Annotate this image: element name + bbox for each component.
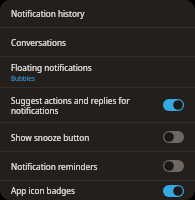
button[interactable]: App icon badges, on: [160, 181, 186, 200]
button[interactable]: Show snooze button: [0, 123, 195, 151]
button[interactable]: Notification reminders, off: [160, 156, 186, 176]
button[interactable]: Suggest actions and replies for notifica…: [0, 88, 195, 122]
staticText: Notification reminders: [11, 161, 98, 172]
button[interactable]: App icon badges: [0, 181, 195, 200]
staticText: Floating notifications: [11, 62, 92, 73]
staticText: App icon badges: [11, 185, 75, 196]
staticText: Show snooze button: [11, 132, 90, 143]
button[interactable]: Suggest actions and replies for notifica…: [160, 95, 186, 115]
staticText: Bubbles: [11, 74, 35, 83]
staticText: Notification history: [11, 8, 85, 19]
button[interactable]: Notification reminders: [0, 152, 195, 180]
button[interactable]: Floating notifications: [0, 57, 195, 87]
button[interactable]: Notification history: [0, 0, 195, 27]
staticText: Conversations: [11, 37, 66, 48]
button[interactable]: Show snooze button, off: [160, 127, 186, 147]
button[interactable]: Conversations: [0, 28, 195, 56]
staticText: Suggest actions and replies for notifica…: [11, 95, 154, 116]
